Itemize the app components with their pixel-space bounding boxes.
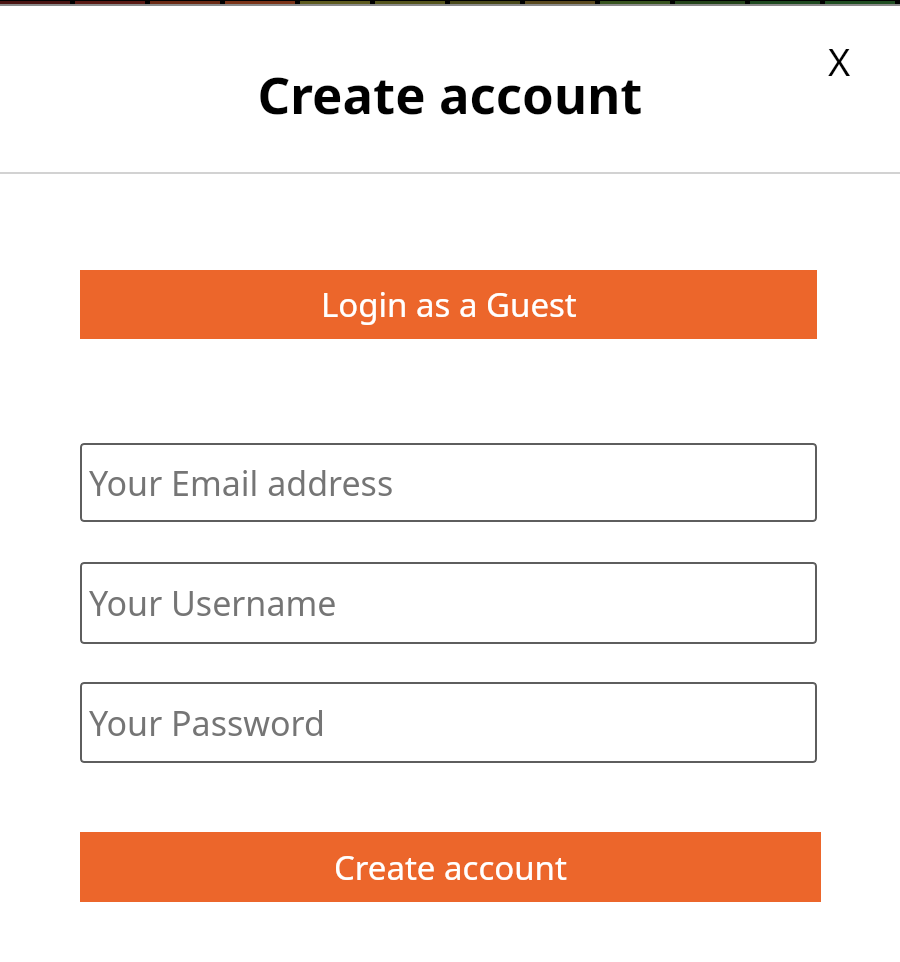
button[interactable]: Login as a Guest [80,270,817,339]
button[interactable]: Close [808,30,870,92]
button[interactable]: Your Username [80,562,817,644]
button[interactable]: Create account [80,832,821,902]
staticText: Your Email address [89,460,394,506]
staticText: X [828,35,851,87]
staticText: Create account [334,845,567,890]
staticText: Login as a Guest [321,282,577,327]
button[interactable]: Your Email address [80,443,817,522]
staticText: Create account [0,59,900,128]
staticText: Your Password [89,700,325,746]
button[interactable]: Your Password [80,682,817,763]
staticText: Your Username [89,580,337,626]
